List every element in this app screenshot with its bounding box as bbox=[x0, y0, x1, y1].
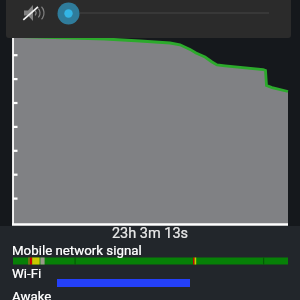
button[interactable]: Mobile network signal bbox=[12, 243, 142, 259]
button[interactable]: Unmute bbox=[22, 1, 46, 25]
button[interactable]: Wi-Fi bbox=[12, 266, 42, 282]
button[interactable]: Awake bbox=[12, 289, 52, 300]
staticText: 23h 3m 13s bbox=[0, 225, 300, 242]
